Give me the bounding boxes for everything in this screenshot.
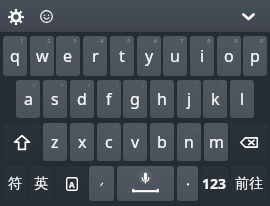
staticText: A bbox=[69, 179, 75, 190]
button[interactable]: f bbox=[97, 80, 121, 118]
staticText: @ bbox=[31, 81, 37, 89]
button[interactable]: v bbox=[123, 123, 147, 161]
button[interactable] bbox=[89, 166, 114, 201]
button[interactable]: 英 bbox=[29, 166, 52, 201]
button[interactable]: t bbox=[110, 36, 134, 76]
staticText: 6 bbox=[154, 37, 158, 45]
button[interactable]: j bbox=[177, 80, 201, 118]
button[interactable]: m bbox=[204, 123, 228, 161]
staticText: u bbox=[170, 45, 180, 67]
button[interactable]: i bbox=[190, 36, 214, 76]
button[interactable]: Shift bbox=[3, 123, 40, 161]
button[interactable]: 123 bbox=[201, 166, 228, 201]
staticText: 2 bbox=[47, 37, 51, 45]
staticText: r bbox=[92, 45, 99, 67]
button[interactable]: g bbox=[123, 80, 147, 118]
staticText: 3 bbox=[73, 37, 77, 45]
staticText: f bbox=[106, 88, 112, 110]
button[interactable]: a bbox=[16, 80, 40, 118]
staticText: m bbox=[209, 131, 224, 153]
button[interactable]: b bbox=[150, 123, 174, 161]
staticText: l bbox=[240, 88, 245, 110]
staticText: / bbox=[221, 81, 224, 89]
staticText: p bbox=[250, 45, 260, 67]
staticText: c bbox=[105, 131, 113, 153]
staticText: " bbox=[61, 124, 64, 132]
button[interactable]: 前往 bbox=[231, 166, 267, 201]
button[interactable]: 符 bbox=[3, 166, 26, 201]
button[interactable]: k bbox=[203, 80, 227, 118]
button[interactable]: Backspace bbox=[230, 123, 267, 161]
staticText: q bbox=[10, 45, 20, 67]
button[interactable]: Space bbox=[117, 166, 174, 201]
button[interactable]: n bbox=[177, 123, 201, 161]
button[interactable]: x bbox=[70, 123, 94, 161]
button[interactable]: l bbox=[230, 80, 254, 118]
staticText: ‘ bbox=[89, 124, 91, 132]
button[interactable]: Settings bbox=[6, 7, 26, 27]
staticText: 7 bbox=[180, 37, 184, 45]
button[interactable]: h bbox=[150, 80, 174, 118]
staticText: 英 bbox=[34, 175, 48, 193]
button[interactable]: s bbox=[43, 80, 67, 118]
staticText: d bbox=[77, 88, 87, 110]
staticText: g bbox=[130, 88, 140, 110]
staticText: ! bbox=[142, 124, 144, 132]
staticText: w bbox=[36, 45, 49, 67]
staticText: t bbox=[119, 45, 125, 67]
button[interactable]: Hide keyboard bbox=[238, 6, 258, 26]
staticText: 符 bbox=[8, 175, 22, 193]
button[interactable]: y bbox=[137, 36, 161, 76]
staticText: z bbox=[51, 131, 59, 153]
staticText: k bbox=[211, 88, 220, 110]
staticText: v bbox=[131, 131, 140, 153]
button[interactable]: o bbox=[217, 36, 241, 76]
staticText: 5 bbox=[127, 37, 131, 45]
staticText: 8 bbox=[207, 37, 211, 45]
staticText: x bbox=[78, 131, 87, 153]
staticText: s bbox=[51, 88, 59, 110]
staticText: 4 bbox=[100, 37, 104, 45]
staticText: j bbox=[187, 88, 192, 110]
button[interactable]: z bbox=[43, 123, 67, 161]
staticText: a bbox=[24, 88, 33, 110]
button[interactable]: w bbox=[30, 36, 54, 76]
staticText: h bbox=[157, 88, 167, 110]
staticText: i bbox=[200, 45, 205, 67]
button[interactable] bbox=[177, 166, 198, 201]
button[interactable]: e bbox=[56, 36, 80, 76]
staticText: b bbox=[157, 131, 167, 153]
staticText: ¥ bbox=[87, 81, 91, 89]
staticText: # bbox=[60, 81, 64, 89]
staticText: ? bbox=[115, 124, 118, 132]
button[interactable]: u bbox=[163, 36, 187, 76]
button[interactable]: q bbox=[3, 36, 27, 76]
button[interactable]: Switch language bbox=[56, 166, 88, 201]
button[interactable]: Emoji bbox=[36, 6, 56, 26]
button[interactable]: d bbox=[70, 80, 94, 118]
staticText: e bbox=[63, 45, 73, 67]
staticText: ) bbox=[142, 81, 144, 89]
staticText: 前往 bbox=[235, 175, 263, 193]
staticText: n bbox=[184, 131, 194, 153]
staticText: ; bbox=[169, 124, 171, 132]
staticText: 123 bbox=[202, 174, 227, 193]
button[interactable]: r bbox=[83, 36, 107, 76]
staticText: 0 bbox=[260, 37, 264, 45]
button[interactable]: p bbox=[243, 36, 267, 76]
staticText: y bbox=[145, 45, 154, 67]
staticText: ( bbox=[116, 81, 118, 89]
staticText: o bbox=[224, 45, 234, 67]
staticText: 1 bbox=[20, 37, 24, 45]
staticText: 9 bbox=[234, 37, 238, 45]
button[interactable]: c bbox=[97, 123, 121, 161]
